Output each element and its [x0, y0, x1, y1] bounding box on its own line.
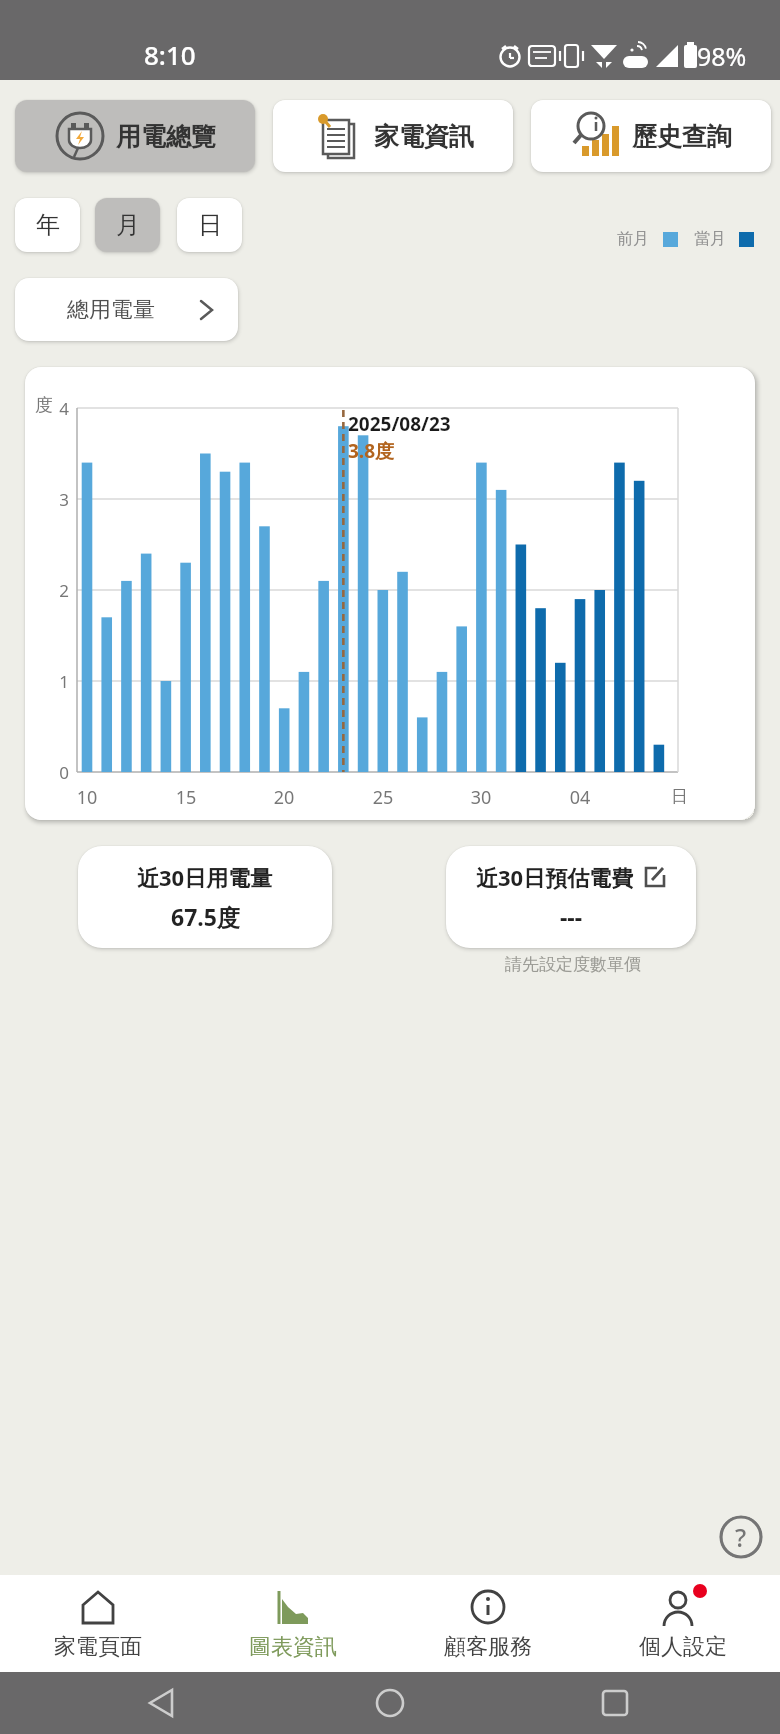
staticText: 請先設定度數單價	[505, 954, 641, 975]
button[interactable]: 近30日用電量	[78, 846, 332, 948]
staticText: 度	[35, 394, 53, 417]
staticText: 個人設定	[639, 1633, 727, 1661]
staticText: 顧客服務	[444, 1633, 532, 1661]
button[interactable]: 顧客服務	[390, 1575, 585, 1672]
button[interactable]: 年	[15, 198, 80, 252]
staticText: 月	[116, 210, 140, 240]
staticText: 98%	[697, 39, 747, 73]
staticText: 歷史查詢	[632, 121, 732, 152]
button[interactable]	[0, 1672, 260, 1734]
staticText: 15	[166, 785, 206, 810]
button[interactable]	[520, 1672, 780, 1734]
staticText: 3	[39, 488, 69, 511]
staticText: 當月	[694, 229, 726, 249]
button[interactable]	[260, 1672, 520, 1734]
staticText: 近30日預估電費	[476, 862, 634, 892]
staticText: ---	[560, 901, 583, 932]
staticText: 8:10	[144, 37, 196, 72]
button[interactable]: ?	[719, 1515, 763, 1559]
staticText: 日	[671, 786, 688, 807]
staticText: ?	[735, 1520, 747, 1554]
staticText: 30	[461, 785, 501, 810]
staticText: 3.8度	[348, 438, 395, 464]
staticText: 家電資訊	[374, 121, 474, 152]
staticText: 前月	[617, 229, 649, 249]
button[interactable]: 歷史查詢	[531, 100, 771, 172]
button[interactable]: 月	[95, 198, 160, 252]
staticText: 04	[560, 785, 600, 810]
button[interactable]: 總用電量	[15, 278, 238, 341]
button[interactable]: 家電頁面	[0, 1575, 195, 1672]
staticText: 家電頁面	[54, 1633, 142, 1661]
staticText: 10	[67, 785, 107, 810]
staticText: 用電總覽	[116, 121, 216, 152]
staticText: 圖表資訊	[249, 1633, 337, 1661]
button[interactable]: 個人設定	[585, 1575, 780, 1672]
button[interactable]: 近30日預估電費	[446, 846, 696, 948]
staticText: 25	[363, 785, 403, 810]
button[interactable]: 圖表資訊	[195, 1575, 390, 1672]
button[interactable]: 用電總覽	[15, 100, 255, 172]
staticText: 近30日用電量	[137, 862, 273, 892]
staticText: 1	[39, 670, 69, 693]
staticText: 日	[198, 210, 222, 240]
staticText: 2	[39, 579, 69, 602]
staticText: 20	[264, 785, 304, 810]
staticText: 4	[39, 397, 69, 420]
staticText: 總用電量	[67, 296, 155, 324]
staticText: 2025/08/23	[348, 411, 451, 437]
staticText: 0	[39, 761, 69, 784]
staticText: 67.5度	[171, 901, 240, 932]
button[interactable]: 家電資訊	[273, 100, 513, 172]
button[interactable]: 日	[177, 198, 242, 252]
staticText: 年	[36, 210, 60, 240]
